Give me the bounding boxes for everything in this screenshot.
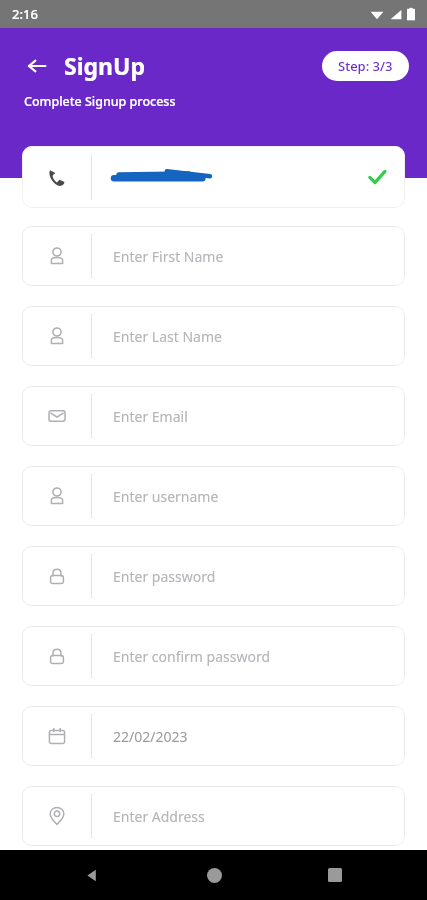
staticText: Enter Last Name — [113, 327, 222, 346]
button[interactable]: Back — [22, 51, 52, 81]
staticText: Enter Address — [113, 807, 205, 826]
staticText: Enter First Name — [113, 247, 224, 266]
staticText: 2:16 — [12, 5, 38, 23]
button[interactable]: Enter username — [22, 466, 405, 526]
button[interactable]: Enter Address — [22, 786, 405, 846]
button[interactable]: Enter confirm password — [22, 626, 405, 686]
button[interactable]: Home — [194, 855, 234, 895]
button[interactable]: Step: 3/3 — [322, 51, 409, 81]
button[interactable]: Enter First Name — [22, 226, 405, 286]
button[interactable]: 22/02/2023 — [22, 706, 405, 766]
staticText: Enter Email — [113, 407, 188, 426]
button[interactable] — [22, 146, 405, 208]
staticText: Enter confirm password — [113, 647, 271, 666]
button[interactable]: Enter password — [22, 546, 405, 606]
button[interactable]: Enter Last Name — [22, 306, 405, 366]
button[interactable]: Enter Email — [22, 386, 405, 446]
button[interactable]: Recent apps — [315, 855, 355, 895]
staticText: 22/02/2023 — [113, 727, 188, 746]
staticText: Enter password — [113, 567, 216, 586]
button[interactable]: Back — [72, 855, 112, 895]
staticText: Enter username — [113, 487, 219, 506]
staticText: Complete Signup process — [24, 93, 176, 110]
staticText: Step: 3/3 — [338, 57, 393, 75]
staticText: SignUp — [64, 50, 145, 81]
